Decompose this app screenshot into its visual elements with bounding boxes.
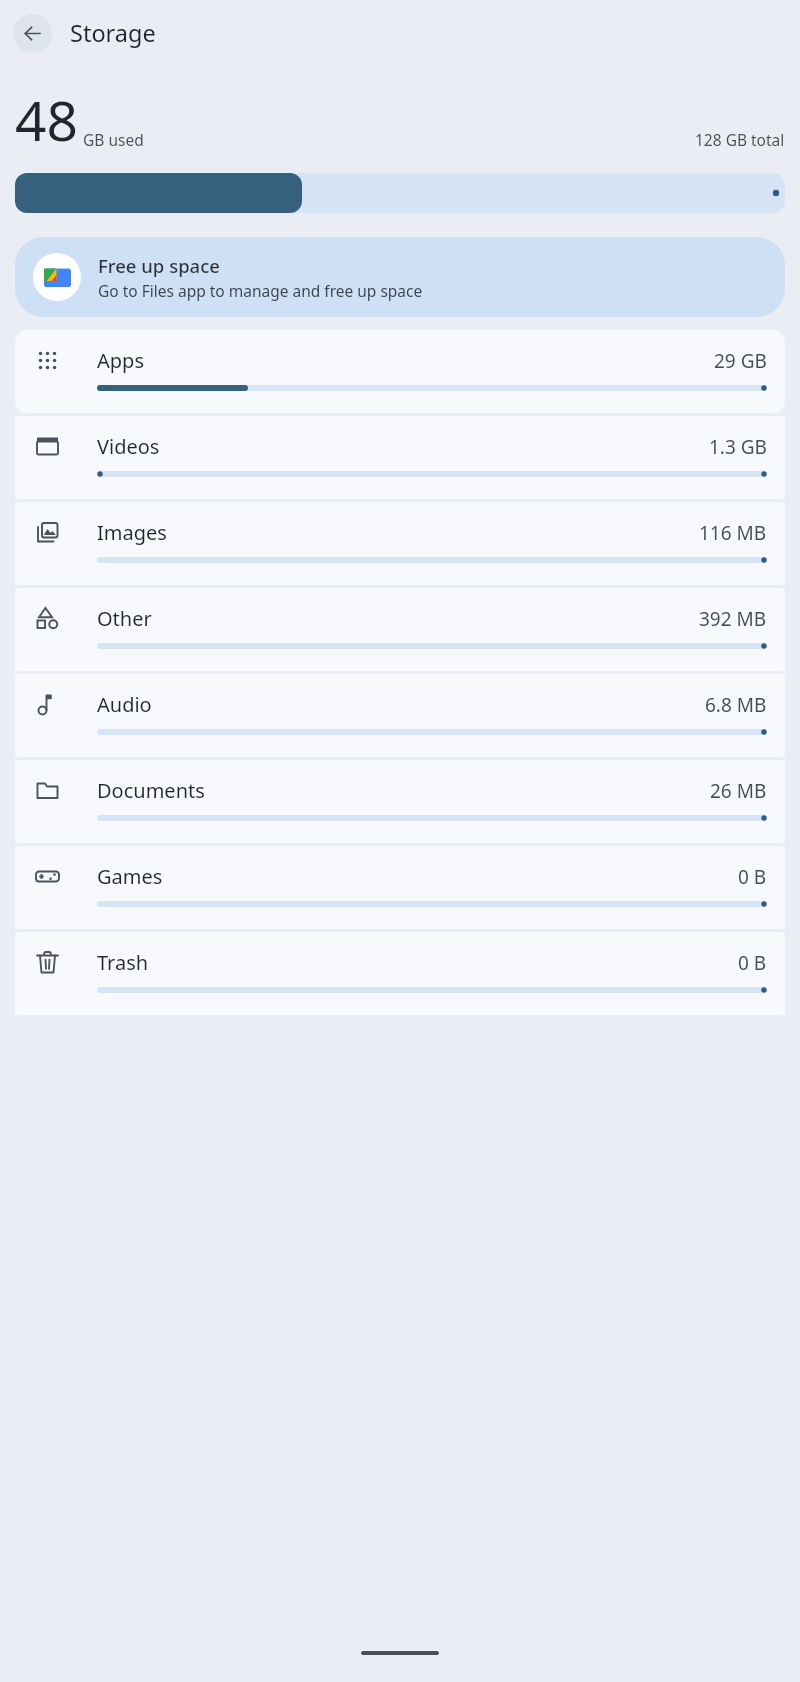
staticText: 128 GB total	[695, 129, 785, 150]
staticText: Go to Files app to manage and free up sp…	[98, 280, 423, 301]
button[interactable]: Audio	[15, 674, 785, 757]
staticText: 116 MB	[699, 520, 767, 546]
staticText: Audio	[97, 691, 152, 718]
button[interactable]: Videos	[15, 416, 785, 499]
staticText: 0 B	[738, 864, 767, 890]
button[interactable]: Images	[15, 502, 785, 585]
button[interactable]: Back	[13, 14, 52, 53]
button[interactable]: Other	[15, 588, 785, 671]
staticText: 29 GB	[714, 348, 767, 374]
button[interactable]: Games	[15, 846, 785, 929]
staticText: 48	[15, 82, 78, 157]
staticText: Games	[97, 863, 163, 890]
staticText: 26 MB	[710, 778, 767, 804]
button[interactable]: Free up space	[15, 237, 785, 317]
button[interactable]: Documents	[15, 760, 785, 843]
staticText: Images	[97, 519, 167, 546]
staticText: GB used	[83, 129, 144, 150]
staticText: 1.3 GB	[709, 434, 767, 460]
staticText: Storage	[70, 17, 156, 49]
button[interactable]: Apps	[15, 330, 785, 413]
staticText: Free up space	[98, 253, 220, 278]
staticText: Videos	[97, 433, 160, 460]
staticText: 6.8 MB	[705, 692, 767, 718]
staticText: Documents	[97, 777, 205, 804]
button[interactable]: Trash	[15, 932, 785, 1015]
staticText: 392 MB	[699, 606, 767, 632]
staticText: Apps	[97, 347, 144, 374]
staticText: 0 B	[738, 950, 767, 976]
staticText: Other	[97, 605, 152, 632]
staticText: Trash	[97, 949, 149, 976]
